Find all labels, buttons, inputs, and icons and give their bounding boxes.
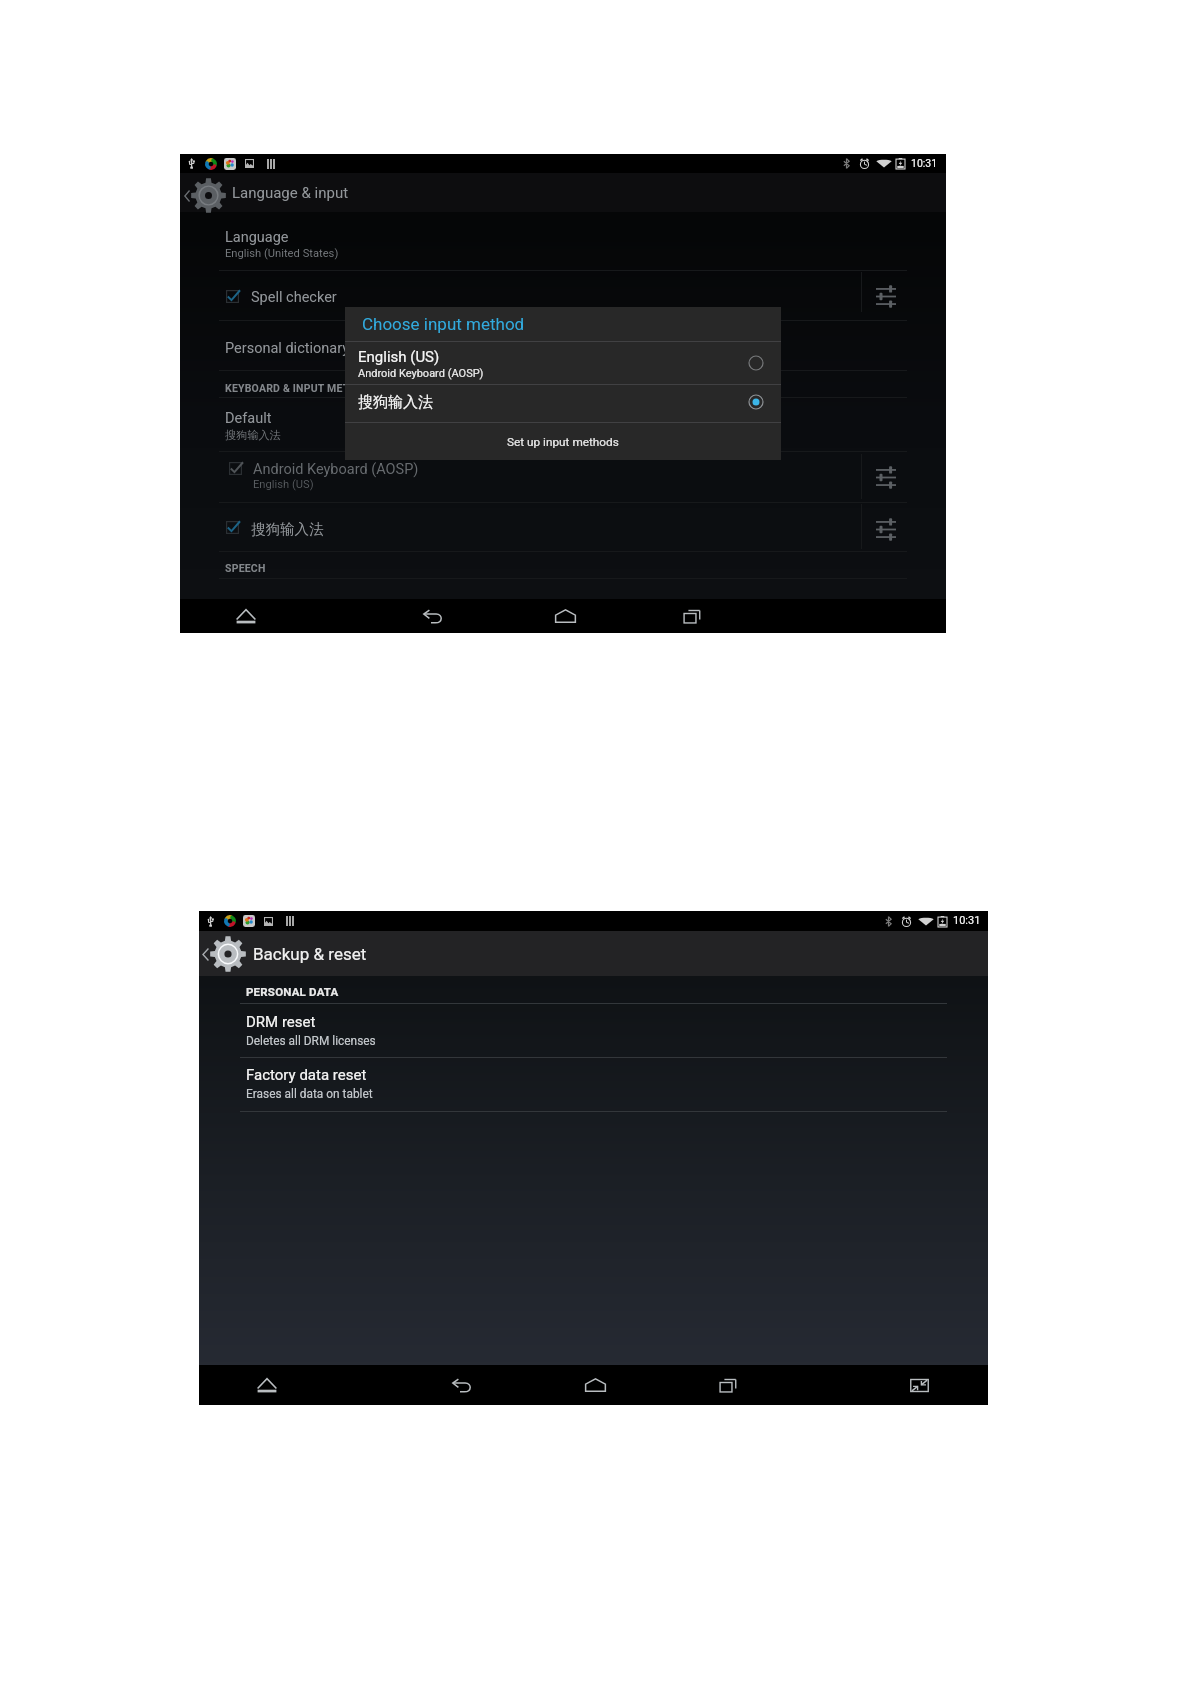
button[interactable] xyxy=(199,1004,988,1057)
button[interactable] xyxy=(345,385,781,422)
button[interactable] xyxy=(180,271,946,320)
staticText: Factory data reset xyxy=(246,1066,367,1084)
button[interactable] xyxy=(180,452,946,502)
button[interactable]: Settings xyxy=(871,282,901,312)
staticText: 10:31 xyxy=(911,157,938,169)
button[interactable]: Navigate up xyxy=(199,931,251,976)
button[interactable] xyxy=(180,321,946,370)
button[interactable]: Toggle xyxy=(226,521,243,538)
button[interactable]: Settings xyxy=(871,515,901,545)
staticText: Language & input xyxy=(232,184,349,202)
staticText: Default xyxy=(225,410,272,427)
button[interactable]: Toggle xyxy=(229,462,246,479)
button[interactable]: Recent apps xyxy=(671,599,713,633)
staticText: DRM reset xyxy=(246,1013,316,1031)
button[interactable]: Settings xyxy=(871,463,901,493)
staticText: Choose input method xyxy=(362,314,525,334)
staticText: Set up input methods xyxy=(507,435,619,449)
staticText: Language xyxy=(225,229,289,246)
button[interactable]: Home xyxy=(574,1365,616,1405)
button[interactable]: Hide keyboard xyxy=(225,599,267,633)
button[interactable] xyxy=(199,1058,988,1111)
staticText: 搜狗输入法 xyxy=(358,393,433,412)
staticText: Spell checker xyxy=(251,289,337,306)
staticText: English (United States) xyxy=(225,247,339,260)
button[interactable]: Recent apps xyxy=(707,1365,749,1405)
staticText: 10:31 xyxy=(953,914,981,927)
button[interactable]: Back xyxy=(441,1365,483,1405)
staticText: PERSONAL DATA xyxy=(246,985,339,998)
staticText: Erases all data on tablet xyxy=(246,1087,373,1101)
button[interactable]: Back xyxy=(412,599,454,633)
staticText: Android Keyboard (AOSP) xyxy=(358,367,484,380)
button[interactable]: Navigate up xyxy=(180,173,230,212)
button[interactable]: Home xyxy=(544,599,586,633)
staticText: Deletes all DRM licenses xyxy=(246,1034,376,1048)
button[interactable] xyxy=(180,398,946,451)
button[interactable]: Shrink screen xyxy=(898,1365,940,1405)
button[interactable] xyxy=(345,342,781,384)
button[interactable] xyxy=(180,503,946,551)
staticText: KEYBOARD & INPUT METHODS xyxy=(225,382,379,394)
staticText: 搜狗输入法 xyxy=(225,428,281,442)
staticText: English (US) xyxy=(253,478,314,491)
staticText: Personal dictionary xyxy=(225,340,350,357)
staticText: Android Keyboard (AOSP) xyxy=(253,461,419,478)
staticText: SPEECH xyxy=(225,562,266,574)
button[interactable]: Set up input methods xyxy=(345,423,781,460)
button[interactable]: Toggle xyxy=(226,290,243,307)
button[interactable] xyxy=(180,212,946,270)
staticText: 搜狗输入法 xyxy=(251,520,324,538)
staticText: English (US) xyxy=(358,348,440,366)
staticText: Backup & reset xyxy=(253,944,367,964)
button[interactable]: Hide keyboard xyxy=(246,1365,288,1405)
